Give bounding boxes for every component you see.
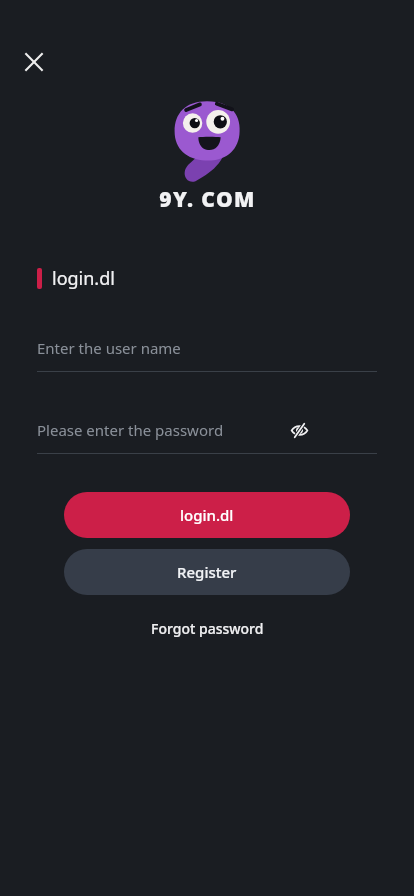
staticText: login.dl: [52, 266, 115, 291]
button[interactable]: Register: [64, 549, 350, 595]
button[interactable]: login.dl: [64, 492, 350, 538]
button[interactable]: Forgot password: [141, 614, 274, 643]
staticText: Register: [177, 562, 237, 582]
button[interactable]: Enter the user name: [37, 325, 377, 372]
staticText: Enter the user name: [37, 338, 181, 358]
staticText: 9Y. COM: [159, 185, 256, 214]
button[interactable]: Close: [14, 42, 54, 82]
staticText: Forgot password: [151, 619, 264, 638]
staticText: Please enter the password: [37, 420, 224, 440]
button[interactable]: Show password: [286, 417, 312, 443]
staticText: login.dl: [180, 505, 234, 525]
button[interactable]: Please enter the password: [37, 407, 377, 453]
